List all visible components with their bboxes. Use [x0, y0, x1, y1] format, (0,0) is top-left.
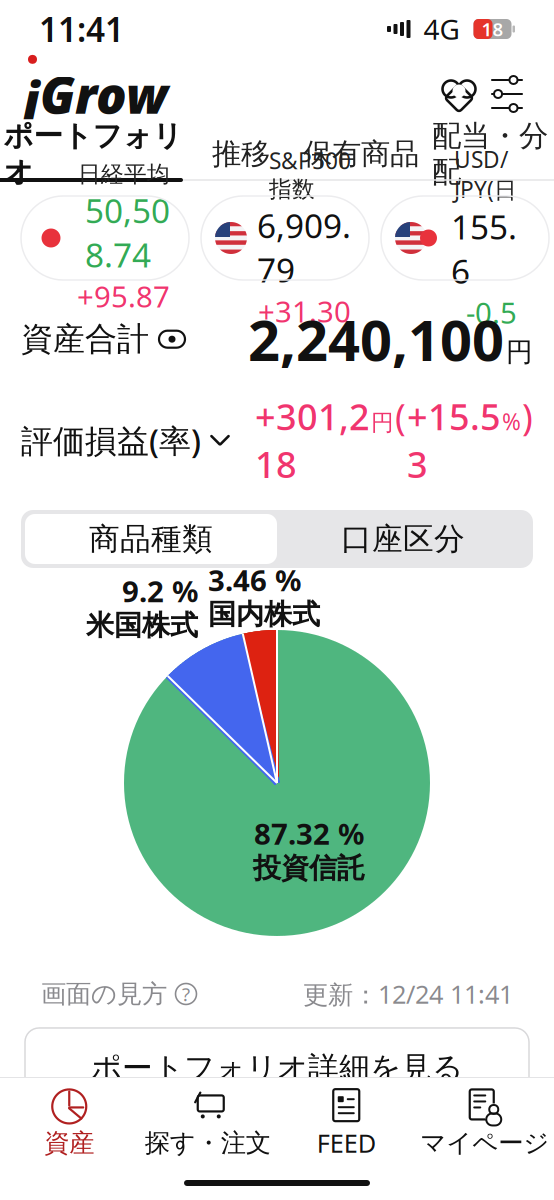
staticText: 資産 [44, 1127, 94, 1158]
button[interactable]: USD/JPY(日 [381, 196, 549, 280]
staticText: +31.30 [258, 292, 351, 331]
staticText: 50,508.74 [85, 188, 170, 277]
button[interactable]: ポートフォリオ詳細を見る [25, 1028, 529, 1108]
button[interactable]: 評価損益(率) [21, 419, 231, 461]
button[interactable]: 保有商品 [296, 130, 426, 178]
staticText: 口座区分 [341, 520, 465, 558]
staticText: 2,240,100 [248, 302, 504, 376]
staticText: 画面の見方 [41, 978, 167, 1009]
staticText: 商品種類 [89, 520, 213, 558]
staticText: 推移 [212, 136, 270, 172]
staticText: 資産合計 [21, 319, 149, 359]
staticText: Grow [40, 60, 168, 128]
staticText: 155.6 [451, 204, 517, 293]
staticText: +301,218 [255, 392, 370, 488]
staticText: 米国株式 [86, 608, 198, 643]
staticText: 円 [371, 409, 394, 437]
staticText: 探す・注文 [145, 1127, 271, 1158]
staticText: 更新：12/24 11:41 [303, 977, 513, 1011]
button[interactable]: 設定 [483, 73, 531, 115]
staticText: +95.87 [77, 277, 170, 316]
staticText: 87.32 % [254, 814, 364, 853]
staticText: 18 [481, 17, 503, 41]
staticText: -0.5 [466, 293, 517, 332]
staticText: 6,909.79 [257, 203, 351, 292]
staticText: ( [395, 392, 406, 440]
staticText: ) [522, 392, 533, 440]
staticText: 3.46 % [208, 560, 301, 599]
button[interactable]: 日経平均 [21, 196, 189, 280]
staticText: % [502, 406, 521, 436]
staticText: 4G [423, 10, 459, 48]
staticText: 9.2 % [122, 571, 198, 610]
button[interactable]: 資産合計 [21, 319, 186, 359]
button[interactable]: 探す・注文 [138, 1084, 277, 1162]
button[interactable]: 推移 [186, 130, 296, 178]
button[interactable]: 口座区分 [277, 514, 529, 564]
button[interactable]: 画面の見方 [41, 978, 197, 1009]
button[interactable]: 配当・分配 [426, 130, 554, 178]
staticText: 投資信託 [253, 851, 365, 885]
staticText: ポートフォリオ [3, 118, 182, 190]
staticText: マイページ [420, 1127, 549, 1158]
staticText: i [23, 66, 39, 133]
button[interactable]: マイページ [415, 1084, 554, 1162]
button[interactable]: S&P500指数 [201, 196, 369, 280]
staticText: ? [182, 982, 190, 1006]
staticText: 配当・分配 [432, 118, 548, 190]
button[interactable]: 資産 [0, 1084, 138, 1162]
button[interactable]: お気に入り [435, 72, 483, 116]
button[interactable]: 商品種類 [25, 514, 277, 564]
staticText: 円 [506, 336, 533, 368]
staticText: 日経平均 [78, 160, 170, 188]
staticText: FEED [317, 1126, 376, 1160]
staticText: 評価損益(率) [21, 419, 201, 461]
button[interactable]: ポートフォリオ [0, 130, 186, 178]
staticText: ポートフォリオ詳細を見る [91, 1049, 463, 1087]
staticText: 保有商品 [303, 136, 419, 172]
staticText: 国内株式 [208, 597, 320, 632]
staticText: S&P500指数 [269, 145, 351, 203]
staticText: 11:41 [39, 7, 124, 51]
staticText: USD/JPY(日 [454, 144, 517, 204]
button[interactable]: FEED [277, 1084, 415, 1162]
staticText: +15.53 [407, 392, 501, 488]
